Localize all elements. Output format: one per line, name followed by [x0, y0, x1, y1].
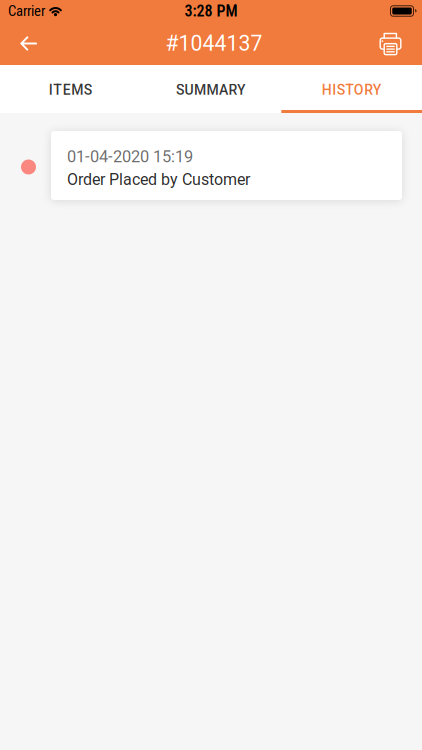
button[interactable]: SUMMARY	[141, 65, 281, 113]
staticText: #1044137	[165, 31, 262, 56]
staticText: 01-04-2020 15:19	[67, 147, 193, 166]
button[interactable]: Print	[380, 21, 422, 65]
button[interactable]: HISTORY	[281, 65, 422, 113]
staticText: Carrier	[8, 3, 45, 19]
staticText: HISTORY	[322, 82, 382, 98]
staticText: SUMMARY	[176, 82, 246, 98]
staticText: Order Placed by Customer	[67, 170, 250, 189]
staticText: ITEMS	[49, 82, 92, 98]
button[interactable]: ITEMS	[0, 65, 141, 113]
button[interactable]: Back	[0, 23, 37, 64]
staticText: 3:28 PM	[184, 2, 237, 20]
